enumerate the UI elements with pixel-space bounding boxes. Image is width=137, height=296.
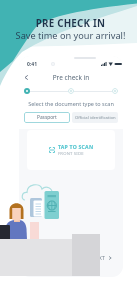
button[interactable]: Passport [24, 112, 70, 123]
staticText: Select the document type to scan [19, 100, 123, 107]
button[interactable]: TAP TO SCAN [27, 130, 115, 170]
staticText: FRONT SIDE [58, 151, 84, 157]
staticText: Save time on your arrival! [2, 29, 137, 42]
button[interactable]: NEXT [91, 254, 112, 261]
staticText: Pre check in [19, 73, 123, 82]
button[interactable]: Back [19, 70, 33, 84]
staticText: Passport [37, 114, 57, 121]
staticText: PRE CHECK IN [2, 17, 137, 30]
staticText: 0:41 [27, 61, 37, 68]
staticText: NEXT [91, 254, 106, 261]
button[interactable]: Official identification [72, 112, 118, 123]
staticText: Official identification [75, 115, 116, 121]
staticText: TAP TO SCAN [58, 143, 94, 150]
